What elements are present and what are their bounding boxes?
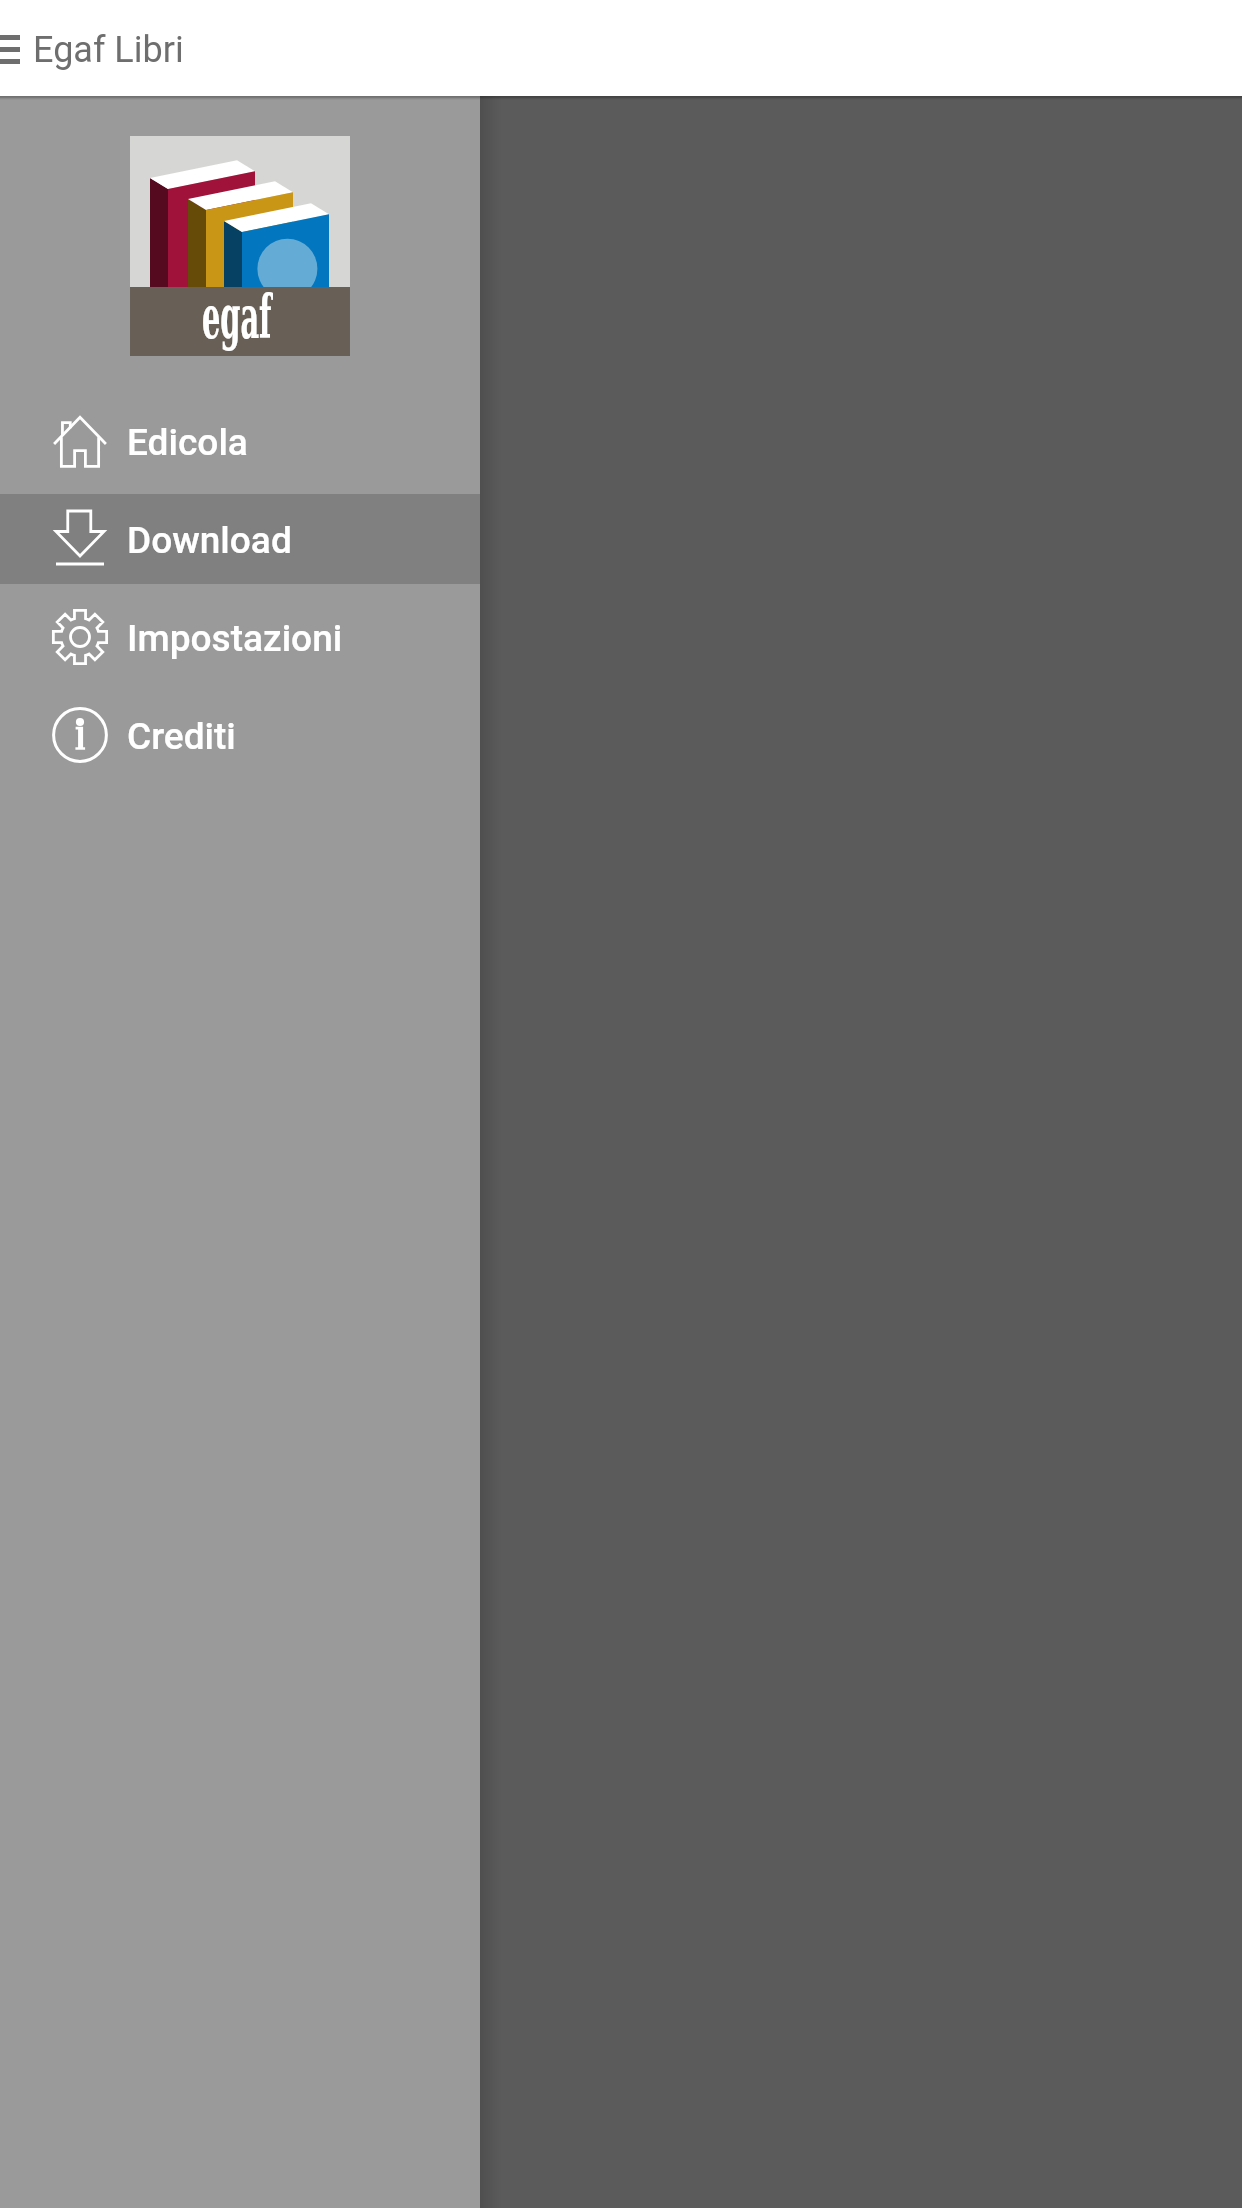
staticText: Crediti <box>127 715 236 758</box>
staticText: Download <box>127 519 292 562</box>
button[interactable]: Impostazioni <box>0 592 480 682</box>
button[interactable]: Crediti <box>0 690 480 780</box>
button[interactable]: Edicola <box>0 396 480 486</box>
staticText: Egaf Libri <box>33 29 184 71</box>
button[interactable]: Download <box>0 494 480 584</box>
button[interactable]: Open navigation drawer <box>0 0 42 96</box>
staticText: Edicola <box>127 421 248 464</box>
staticText: Impostazioni <box>127 617 343 660</box>
staticText: egaf <box>202 282 272 352</box>
